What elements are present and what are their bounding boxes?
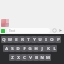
button[interactable]: W	[7, 36, 13, 43]
button[interactable]: Y	[31, 36, 37, 43]
staticText: O	[50, 37, 54, 43]
button[interactable]: M	[45, 54, 51, 61]
button[interactable]: I	[43, 36, 49, 43]
button[interactable]: B	[33, 54, 39, 61]
button[interactable]: K	[45, 45, 51, 52]
button[interactable]: N	[39, 54, 45, 61]
staticText: Y	[33, 37, 36, 43]
button[interactable]: R	[19, 36, 25, 43]
staticText: K	[47, 46, 50, 52]
staticText: H	[34, 46, 38, 52]
button[interactable]: A	[3, 45, 9, 52]
staticText: E	[15, 37, 18, 43]
button[interactable]: J	[39, 45, 45, 52]
staticText: T	[27, 37, 30, 43]
staticText: B	[35, 55, 38, 61]
staticText: Z	[11, 55, 14, 61]
staticText: U	[38, 37, 42, 43]
button[interactable]: U	[37, 36, 43, 43]
button[interactable]: O	[49, 36, 55, 43]
button[interactable]: Emoji	[52, 28, 57, 33]
staticText: G	[28, 46, 32, 52]
button[interactable]: X	[15, 54, 21, 61]
staticText: L	[53, 46, 56, 52]
button[interactable]: D	[15, 45, 21, 52]
staticText: Text	[9, 29, 16, 33]
staticText: X	[17, 55, 20, 61]
button[interactable]: T	[25, 36, 31, 43]
button[interactable]: P	[55, 36, 61, 43]
button[interactable]: L	[51, 45, 57, 52]
staticText: W	[8, 37, 12, 43]
button[interactable]: Z	[9, 54, 15, 61]
button[interactable]: G	[27, 45, 33, 52]
staticText: A	[5, 46, 8, 52]
staticText: M	[46, 55, 50, 61]
staticText: D	[16, 46, 20, 52]
staticText: C	[23, 55, 26, 61]
button[interactable]: S	[9, 45, 15, 52]
staticText: S	[11, 46, 14, 52]
staticText: J	[41, 46, 43, 52]
staticText: P	[57, 37, 60, 43]
staticText: Q	[2, 37, 6, 43]
button[interactable]: F	[21, 45, 27, 52]
button[interactable]: C	[21, 54, 27, 61]
button[interactable]: E	[13, 36, 19, 43]
button[interactable]: H	[33, 45, 39, 52]
button[interactable]: Q	[1, 36, 7, 43]
button[interactable]: Send	[58, 28, 63, 33]
button[interactable]: Add attachment	[1, 29, 5, 33]
staticText: R	[21, 37, 24, 43]
button[interactable]: Text	[7, 28, 50, 33]
staticText: N	[40, 55, 44, 61]
button[interactable]: V	[27, 54, 33, 61]
button[interactable]: Photo message	[1, 19, 9, 27]
staticText: F	[23, 46, 26, 52]
staticText: I	[45, 37, 47, 43]
staticText: V	[29, 55, 32, 61]
